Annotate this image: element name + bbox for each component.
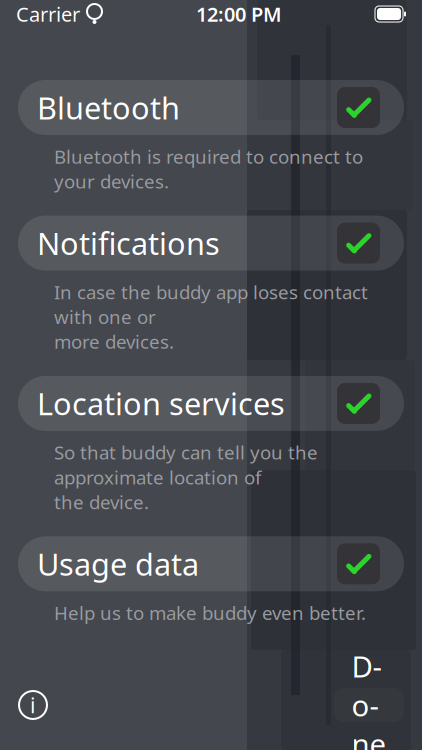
staticText: Bluetooth is required to connect to your… [54,144,363,194]
staticText: So that buddy can tell you the approxima… [54,440,318,514]
staticText: Help us to make buddy even better. [54,600,366,625]
staticText: Done [351,647,386,750]
staticText: Notifications [37,223,220,263]
button[interactable]: Bluetooth [18,80,404,135]
staticText: In case the buddy app loses contact with… [54,280,368,354]
button[interactable]: Information [11,683,55,727]
button[interactable]: Usage data [18,536,404,591]
staticText: Bluetooth [37,87,180,128]
button[interactable]: Done [334,688,404,722]
staticText: Carrier [16,1,80,27]
staticText: 12:00 PM [196,1,282,27]
staticText: i [30,691,36,719]
button[interactable]: Notifications [18,216,404,271]
staticText: Usage data [37,543,199,584]
staticText: Location services [37,383,285,424]
button[interactable]: Location services [18,376,404,431]
